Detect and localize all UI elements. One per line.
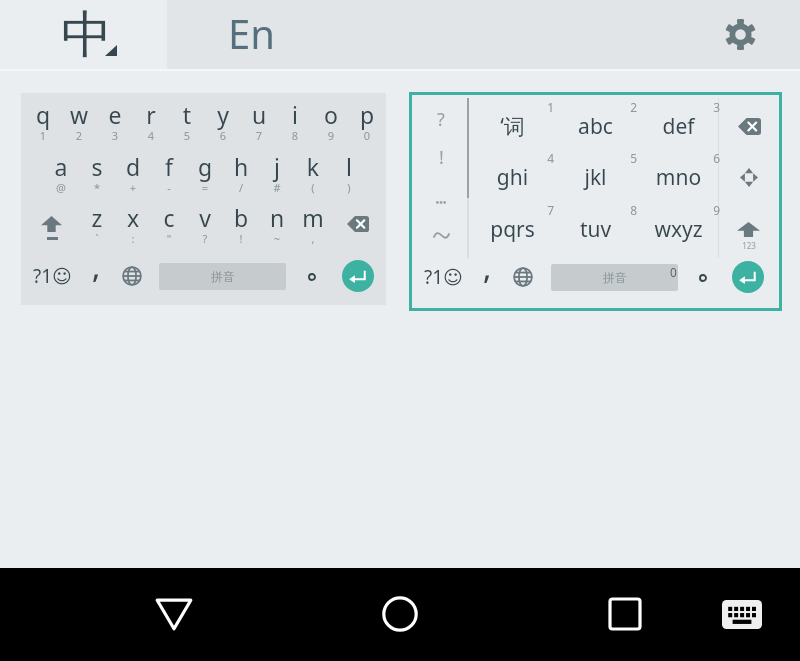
- staticText: 拼音: [211, 269, 235, 284]
- staticText: 9: [313, 128, 349, 143]
- button[interactable]: g: [187, 151, 223, 203]
- button[interactable]: f: [151, 151, 187, 203]
- button[interactable]: y: [205, 99, 241, 151]
- staticText: s: [79, 151, 115, 182]
- staticText: ,: [295, 231, 331, 246]
- button[interactable]: 2: [554, 94, 637, 146]
- button[interactable]: ?: [409, 92, 782, 311]
- button[interactable]: 8: [554, 197, 637, 249]
- staticText: 0: [349, 128, 385, 143]
- button[interactable]: Backspace: [726, 108, 772, 144]
- button[interactable]: r: [133, 99, 169, 151]
- staticText: l: [331, 151, 367, 182]
- staticText: (: [295, 180, 331, 195]
- staticText: 1: [25, 128, 61, 143]
- staticText: n: [259, 202, 295, 233]
- button[interactable]: 7: [471, 197, 554, 249]
- button[interactable]: 1: [471, 94, 554, 146]
- staticText: wxyz: [637, 215, 720, 244]
- button[interactable]: q: [21, 93, 386, 305]
- button[interactable]: ?: [418, 102, 464, 136]
- staticText: q: [25, 99, 61, 130]
- button[interactable]: o: [313, 99, 349, 151]
- staticText: d: [115, 151, 151, 182]
- staticText: b: [223, 202, 259, 233]
- button[interactable]: t: [169, 99, 205, 151]
- button[interactable]: q: [25, 99, 61, 151]
- button[interactable]: d: [115, 151, 151, 203]
- button[interactable]: [418, 192, 464, 212]
- staticText: k: [295, 151, 331, 182]
- button[interactable]: b: [223, 202, 259, 254]
- button[interactable]: 中: [0, 0, 167, 69]
- button[interactable]: c: [151, 202, 187, 254]
- staticText: !: [223, 231, 259, 246]
- button[interactable]: 3: [637, 94, 720, 146]
- button[interactable]: 拼音: [159, 263, 286, 290]
- button[interactable]: ,: [84, 258, 108, 294]
- button[interactable]: [418, 225, 464, 245]
- button[interactable]: n: [259, 202, 295, 254]
- button[interactable]: v: [187, 202, 223, 254]
- button[interactable]: [300, 264, 324, 290]
- button[interactable]: 拼音: [551, 264, 678, 291]
- button[interactable]: Shift: [26, 200, 77, 248]
- button[interactable]: Recent apps: [585, 582, 665, 646]
- button[interactable]: w: [61, 99, 97, 151]
- button[interactable]: z: [79, 202, 115, 254]
- staticText: t: [169, 99, 205, 130]
- button[interactable]: Backspace: [335, 207, 381, 241]
- staticText: ?1☺: [424, 264, 463, 290]
- staticText: v: [187, 202, 223, 233]
- staticText: w: [61, 99, 97, 130]
- button[interactable]: s: [79, 151, 115, 203]
- button[interactable]: 9: [637, 197, 720, 249]
- staticText: 7: [472, 202, 554, 218]
- button[interactable]: p: [349, 99, 385, 151]
- button[interactable]: 5: [554, 145, 637, 197]
- staticText: +: [115, 180, 151, 195]
- button[interactable]: e: [97, 99, 133, 151]
- staticText: 1: [472, 99, 554, 115]
- button[interactable]: i: [277, 99, 313, 151]
- staticText: 8: [555, 202, 637, 218]
- button[interactable]: j: [259, 151, 295, 203]
- staticText: ): [331, 180, 367, 195]
- staticText: g: [187, 151, 223, 182]
- button[interactable]: ?1☺: [417, 262, 469, 292]
- button[interactable]: Home: [360, 582, 440, 646]
- button[interactable]: l: [331, 151, 367, 203]
- button[interactable]: Enter: [342, 260, 374, 292]
- button[interactable]: a: [43, 151, 79, 203]
- button[interactable]: ,: [475, 259, 499, 295]
- staticText: tuv: [554, 215, 637, 244]
- button[interactable]: Move cursor: [726, 159, 772, 195]
- button[interactable]: !: [418, 140, 464, 174]
- button[interactable]: En: [167, 0, 800, 69]
- staticText: pqrs: [471, 215, 554, 244]
- button[interactable]: Back: [134, 582, 214, 646]
- button[interactable]: Switch language: [507, 261, 539, 293]
- button[interactable]: Shift: [725, 215, 773, 255]
- button[interactable]: u: [241, 99, 277, 151]
- button[interactable]: ?1☺: [26, 261, 78, 291]
- staticText: 4: [472, 150, 554, 166]
- button[interactable]: 4: [471, 145, 554, 197]
- staticText: ?1☺: [33, 263, 72, 289]
- staticText: m: [295, 202, 331, 233]
- button[interactable]: k: [295, 151, 331, 203]
- button[interactable]: Settings: [716, 10, 764, 58]
- button[interactable]: x: [115, 202, 151, 254]
- staticText: ‘词: [471, 112, 554, 141]
- button[interactable]: [691, 265, 715, 291]
- button[interactable]: Keyboard: [706, 586, 778, 642]
- staticText: 3: [97, 128, 133, 143]
- button[interactable]: Enter: [732, 261, 764, 293]
- button[interactable]: m: [295, 202, 331, 254]
- button[interactable]: 6: [637, 145, 720, 197]
- staticText: 3: [638, 99, 720, 115]
- button[interactable]: Switch language: [116, 260, 148, 292]
- staticText: 0: [670, 264, 677, 280]
- staticText: ~: [259, 231, 295, 246]
- button[interactable]: h: [223, 151, 259, 203]
